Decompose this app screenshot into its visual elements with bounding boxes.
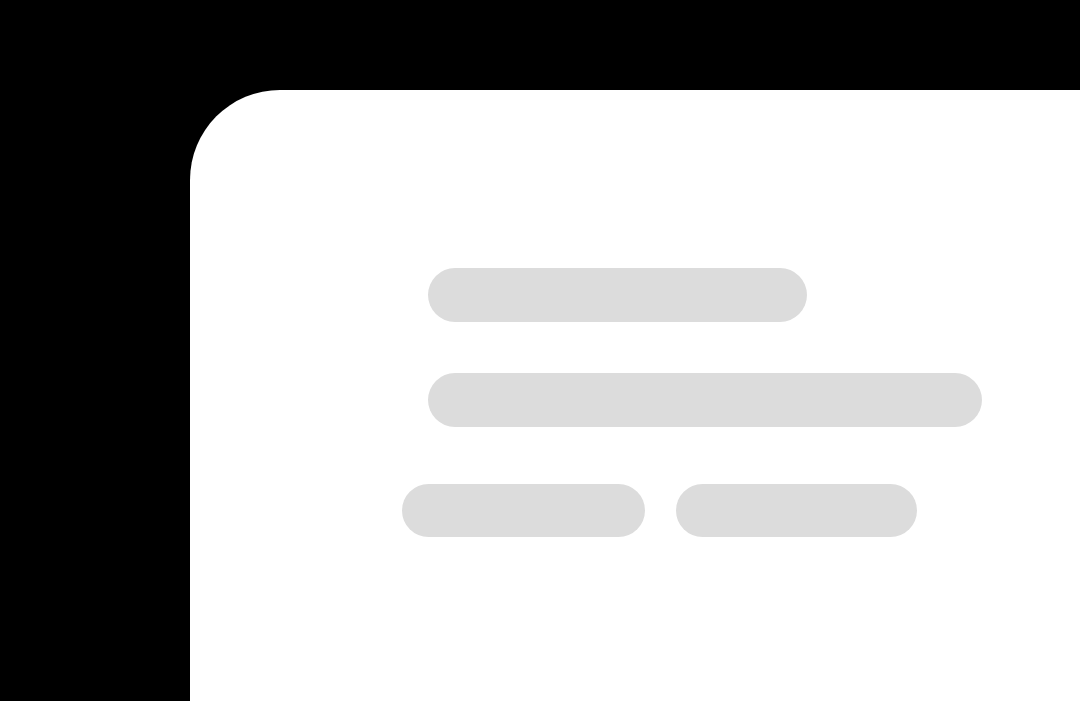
button[interactable]: Loading placeholder <box>676 484 917 537</box>
button[interactable]: Loading placeholder <box>428 373 982 427</box>
button[interactable]: Loading placeholder <box>428 268 807 322</box>
other: Content loading <box>190 90 1080 701</box>
button[interactable]: Loading placeholder <box>402 484 645 537</box>
